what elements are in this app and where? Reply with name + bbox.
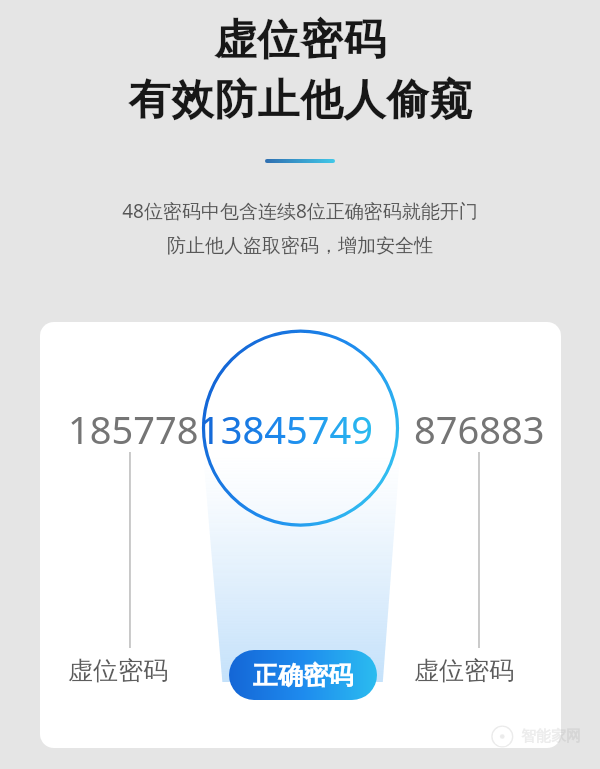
staticText: 防止他人盗取密码，增加安全性 [167,234,433,258]
staticText: 876883 [414,403,545,455]
staticText: 13845749 [199,403,373,455]
button[interactable]: 185778 [40,322,561,748]
staticText: 虚位密码 [414,655,514,686]
staticText: 185778 [68,403,199,455]
staticText: 虚位密码 [214,14,386,67]
staticText: 48位密码中包含连续8位正确密码就能开门 [122,198,478,224]
staticText: 有效防止他人偷窥 [128,74,472,127]
other: Site watermark [487,723,521,749]
staticText: 虚位密码 [68,655,168,686]
staticText: 正确密码 [253,660,353,691]
button[interactable]: 正确密码 [229,650,377,700]
staticText: 智能家网 [521,727,581,746]
